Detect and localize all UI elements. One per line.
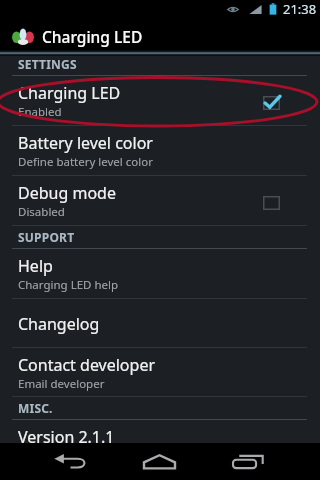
staticText: 21:38 [283, 0, 317, 18]
staticText: Charging LED help [18, 277, 119, 293]
button[interactable]: Version 2.1.1 [0, 420, 320, 469]
button[interactable]: Battery level color [0, 126, 320, 176]
button[interactable]: Home [143, 443, 176, 480]
staticText: Help [18, 255, 53, 277]
button[interactable]: Debug mode [0, 176, 320, 226]
staticText: Charging LED [18, 448, 92, 464]
staticText: Battery level color [18, 132, 153, 154]
button[interactable]: Back [54, 443, 87, 480]
button[interactable]: Debug mode disabled [263, 181, 303, 221]
staticText: Define battery level color [18, 154, 153, 170]
staticText: Debug mode [18, 182, 116, 204]
button[interactable]: Recent apps [232, 443, 265, 480]
staticText: SETTINGS [18, 56, 77, 72]
staticText: Email developer [18, 376, 105, 392]
staticText: Enabled [18, 104, 62, 120]
button[interactable]: Contact developer [0, 348, 320, 397]
button[interactable]: Changelog [0, 299, 320, 348]
staticText: MISC. [18, 400, 53, 416]
button[interactable]: Charging LED [0, 18, 320, 50]
staticText: Disabled [18, 204, 65, 220]
button[interactable]: Help [0, 249, 320, 299]
staticText: Charging LED [42, 26, 143, 47]
staticText: SUPPORT [18, 229, 75, 245]
staticText: Changelog [18, 313, 100, 335]
staticText: Version 2.1.1 [18, 426, 115, 448]
button[interactable]: Charging LED enabled [263, 81, 303, 121]
staticText: Charging LED [18, 82, 121, 104]
staticText: Contact developer [18, 354, 156, 376]
button[interactable]: Charging LED [0, 76, 320, 126]
